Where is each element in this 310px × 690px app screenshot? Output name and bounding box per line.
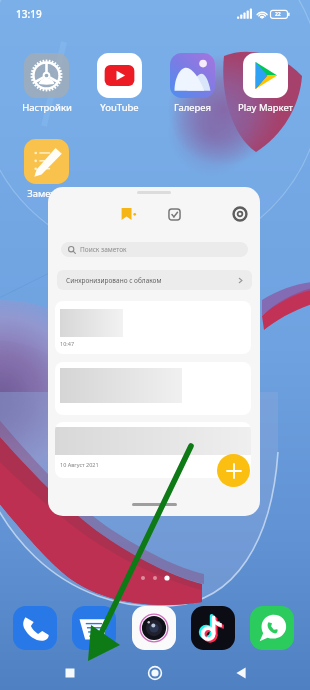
button[interactable]: WhatsApp [250,606,294,650]
button[interactable]: Галерея [156,53,229,114]
staticText: 10:47 [60,340,75,347]
button[interactable]: Заметки [10,139,83,200]
staticText: Галерея [174,101,211,114]
button[interactable]: Messages [72,606,116,650]
staticText: Синхронизировано с облаком [66,276,162,285]
button[interactable]: 10 Август 2021 [55,422,251,478]
button[interactable]: Camera [132,606,176,650]
button[interactable]: Home [139,657,171,689]
staticText: 13:19 [16,7,42,21]
staticText: Заметки [27,187,66,200]
button[interactable]: Синхронизировано с облаком [57,270,252,290]
button[interactable]: TikTok [191,606,235,650]
button[interactable] [55,362,251,415]
staticText: YouTube [100,101,139,114]
button[interactable]: Notes [116,202,140,226]
button[interactable]: Tasks [162,202,186,226]
button[interactable]: Play Маркет [229,53,302,114]
button[interactable]: Phone [13,606,57,650]
staticText: Play Маркет [238,101,293,114]
button[interactable]: Recents [54,657,86,689]
button[interactable]: YouTube [83,53,156,114]
button[interactable]: Поиск заметок [61,242,248,257]
button[interactable]: Add note [217,454,250,487]
staticText: Настройки [22,101,72,114]
staticText: Поиск заметок [80,245,127,254]
button[interactable]: Back [225,657,257,689]
button[interactable]: Настройки [10,53,83,114]
button[interactable]: 10:47 [55,301,251,354]
button[interactable]: Settings [228,202,252,226]
staticText: 22 [275,11,281,18]
staticText: 10 Август 2021 [60,461,99,468]
